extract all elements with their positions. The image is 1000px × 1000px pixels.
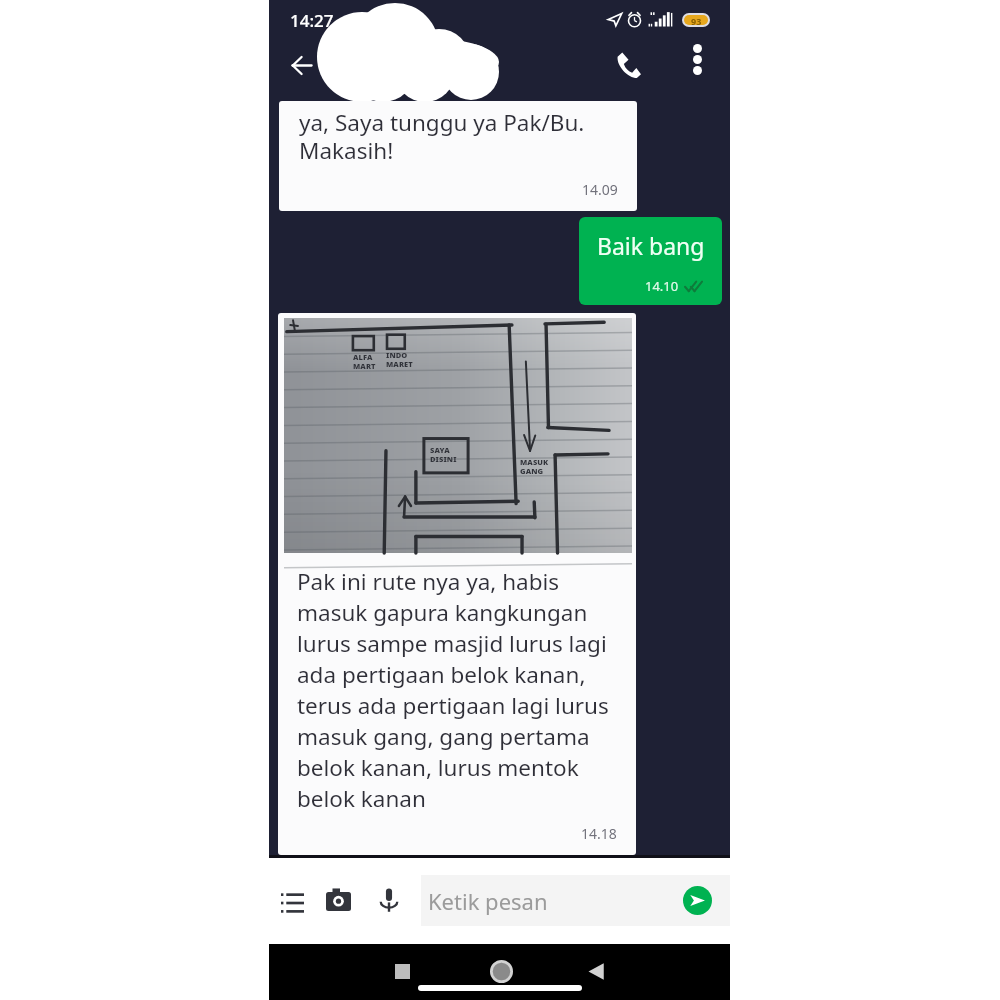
- button[interactable]: Menu: [273, 882, 312, 921]
- staticText: SAYA DISINI: [430, 445, 457, 465]
- staticText: Pak ini rute nya ya, habis masuk gapura …: [297, 566, 609, 814]
- staticText: 14.10: [645, 277, 679, 295]
- button[interactable]: ALFA MART: [278, 313, 636, 855]
- button[interactable]: Call: [607, 44, 649, 86]
- button[interactable]: More options: [678, 40, 717, 79]
- staticText: 14.18: [581, 824, 617, 843]
- button[interactable]: ya, Saya tunggu ya Pak/Bu. Makasih!: [279, 101, 637, 211]
- staticText: 14:27: [290, 9, 334, 32]
- button[interactable]: Home: [485, 955, 517, 987]
- button[interactable]: Send: [683, 886, 712, 915]
- staticText: 93: [691, 15, 702, 25]
- staticText: ALFA MART: [353, 352, 376, 372]
- button[interactable]: Back: [582, 957, 610, 985]
- button[interactable]: Voice message: [369, 880, 408, 919]
- staticText: MASUK GANG: [520, 457, 549, 477]
- button[interactable]: Back: [283, 46, 321, 84]
- staticText: 14.09: [582, 180, 618, 199]
- staticText: INDO MARET: [386, 350, 413, 370]
- staticText: ya, Saya tunggu ya Pak/Bu. Makasih!: [299, 107, 585, 166]
- button[interactable]: Camera: [319, 880, 358, 919]
- staticText: Baik bang: [597, 230, 705, 261]
- button[interactable]: Ketik pesan: [421, 875, 730, 926]
- button[interactable]: Baik bang: [579, 217, 722, 305]
- button[interactable]: Recents: [388, 957, 416, 985]
- staticText: Ketik pesan: [428, 886, 548, 916]
